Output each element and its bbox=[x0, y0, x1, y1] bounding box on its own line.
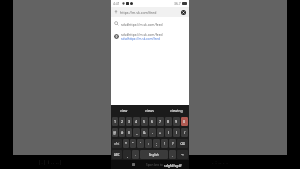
button[interactable]: ABC bbox=[112, 150, 122, 159]
button[interactable]: Insert bbox=[111, 7, 189, 17]
button[interactable]: ' bbox=[137, 139, 144, 148]
staticText: ABC bbox=[114, 153, 120, 157]
staticText: sdsdhttps://m.sk.com/feed bbox=[121, 22, 163, 26]
staticText: $ bbox=[128, 130, 131, 135]
staticText: # bbox=[121, 130, 124, 135]
staticText: ( bbox=[168, 130, 170, 135]
staticText: 0 bbox=[183, 119, 186, 124]
button[interactable]: 7 bbox=[157, 117, 164, 126]
staticText: 2 bbox=[121, 119, 124, 124]
staticText: 5 bbox=[143, 119, 146, 124]
button[interactable]: + bbox=[157, 128, 164, 137]
other: Search bbox=[114, 21, 119, 26]
button[interactable]: . bbox=[169, 150, 176, 159]
button[interactable]: # bbox=[119, 128, 125, 137]
button[interactable]: - bbox=[149, 128, 156, 137]
button[interactable]: Search bbox=[111, 19, 189, 28]
button[interactable]: Clear bbox=[181, 10, 186, 15]
staticText: 36.7 bbox=[174, 1, 181, 6]
button[interactable]: English bbox=[140, 150, 168, 159]
button[interactable]: Home bbox=[132, 163, 135, 166]
staticText: 6 bbox=[151, 119, 154, 124]
button[interactable]: 0 bbox=[181, 117, 188, 126]
staticText: 3 bbox=[128, 119, 131, 124]
button[interactable]: 6 bbox=[149, 117, 156, 126]
button[interactable]: ) bbox=[173, 128, 180, 137]
button[interactable]: _ bbox=[133, 128, 140, 137]
staticText: sdsdhttps://m.sk.com/feed bbox=[121, 37, 160, 41]
staticText: English bbox=[149, 153, 159, 157]
button[interactable]: 3 bbox=[126, 117, 132, 126]
staticText: ; bbox=[156, 141, 157, 146]
button[interactable]: Website bbox=[111, 30, 189, 42]
staticText: · bbox=[135, 153, 136, 157]
staticText: - bbox=[152, 130, 154, 135]
button[interactable]: ( bbox=[165, 128, 172, 137]
staticText: https://m.sk.com/feed bbox=[120, 10, 181, 15]
staticText: 8 bbox=[167, 119, 170, 124]
staticText: ' bbox=[140, 141, 141, 146]
button[interactable]: * bbox=[123, 139, 129, 148]
staticText: ? bbox=[172, 141, 174, 146]
button[interactable]: ; bbox=[153, 139, 160, 148]
button[interactable]: ! bbox=[161, 139, 168, 148]
button[interactable]: 8 bbox=[165, 117, 172, 126]
staticText: 1 bbox=[114, 119, 117, 124]
button[interactable]: ? bbox=[169, 139, 176, 148]
button[interactable]: 1 bbox=[112, 117, 118, 126]
button[interactable]: & bbox=[141, 128, 148, 137]
staticText: ! bbox=[164, 141, 165, 146]
button[interactable]: viewing bbox=[163, 105, 189, 116]
staticText: Spon bro to bbox=[146, 163, 164, 167]
button[interactable]: 2 bbox=[119, 117, 125, 126]
other: Website bbox=[114, 34, 119, 39]
staticText: + bbox=[159, 130, 162, 135]
button[interactable]: " bbox=[130, 139, 136, 148]
staticText: : bbox=[148, 141, 149, 146]
staticText: ⌫ bbox=[180, 142, 185, 146]
staticText: views bbox=[145, 108, 155, 113]
staticText: @ bbox=[113, 130, 117, 135]
button[interactable]: 9 bbox=[173, 117, 180, 126]
button[interactable]: ⌫ bbox=[177, 139, 188, 148]
button[interactable]: , bbox=[123, 150, 131, 159]
staticText: ) bbox=[176, 130, 178, 135]
staticText: → bbox=[181, 153, 184, 157]
staticText: =\< bbox=[114, 141, 120, 146]
staticText: |.| i .. ..| bbox=[38, 158, 63, 166]
staticText: . bbox=[172, 153, 173, 157]
staticText: * bbox=[125, 141, 127, 146]
staticText: _ bbox=[136, 130, 138, 135]
button[interactable]: @ bbox=[112, 128, 118, 137]
button[interactable]: 4 bbox=[133, 117, 140, 126]
button[interactable]: views bbox=[137, 105, 163, 116]
staticText: 7 bbox=[159, 119, 162, 124]
button[interactable]: → bbox=[177, 150, 188, 159]
other: Insert bbox=[114, 10, 118, 14]
staticText: view bbox=[120, 108, 128, 113]
staticText: 4 bbox=[135, 119, 138, 124]
button[interactable]: =\< bbox=[112, 139, 122, 148]
button[interactable]: / bbox=[181, 128, 188, 137]
button[interactable]: $ bbox=[126, 128, 132, 137]
staticText: sdgfdfsgdf bbox=[164, 163, 182, 167]
button[interactable]: · bbox=[132, 150, 139, 159]
button[interactable]: : bbox=[145, 139, 152, 148]
staticText: viewing bbox=[170, 108, 183, 113]
staticText: " bbox=[132, 141, 134, 146]
staticText: 9 bbox=[175, 119, 178, 124]
staticText: sdsdhttps://m.sk.com/feed bbox=[121, 32, 163, 36]
button[interactable]: view bbox=[111, 105, 137, 116]
staticText: & bbox=[143, 130, 146, 135]
staticText: 4:41 bbox=[113, 1, 120, 6]
button[interactable]: 5 bbox=[141, 117, 148, 126]
staticText: / bbox=[184, 130, 186, 135]
